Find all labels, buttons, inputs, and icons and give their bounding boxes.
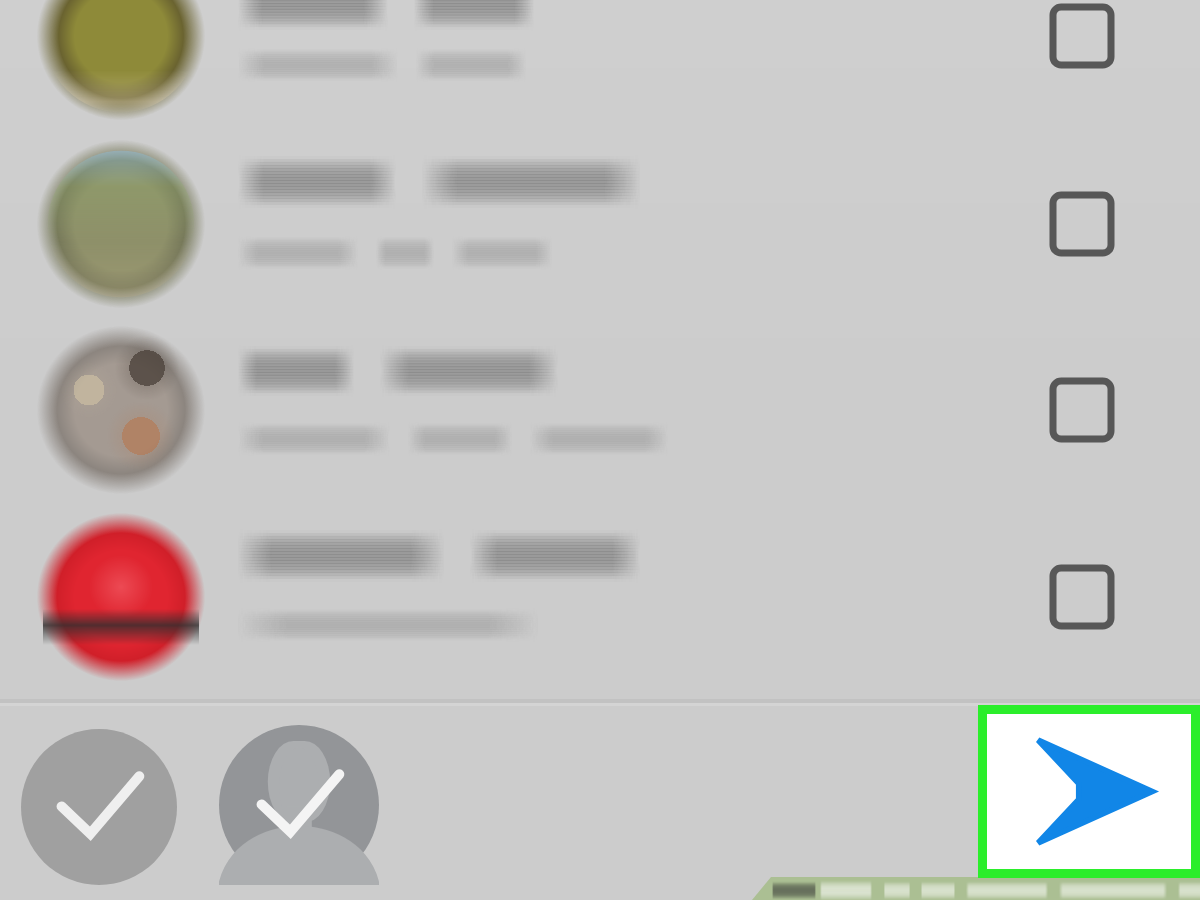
button[interactable]: Send xyxy=(978,705,1200,878)
